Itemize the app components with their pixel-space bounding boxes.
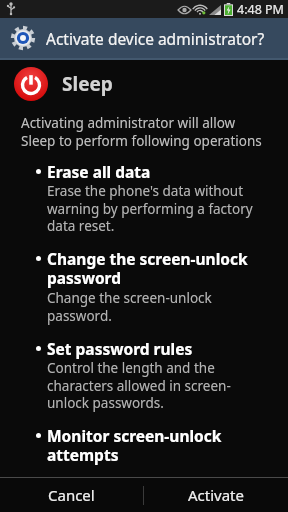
button[interactable]: Cancel — [0, 478, 143, 512]
staticText: Erase the phone's data without warning b… — [47, 182, 270, 235]
staticText: Cancel — [48, 485, 95, 505]
staticText: Change the screen-unlock password. — [47, 289, 270, 325]
staticText: Activate device administrator? — [46, 28, 265, 49]
staticText: 4:48 PM — [237, 1, 284, 18]
staticText: Sleep — [62, 71, 113, 97]
staticText: Set password rules — [47, 338, 193, 359]
staticText: Erase all data — [47, 161, 151, 182]
staticText: Activating administrator will allow Slee… — [21, 114, 270, 150]
button[interactable]: Activate — [144, 478, 288, 512]
staticText: Change the screen-unlock password — [47, 248, 270, 289]
staticText: Activate — [188, 485, 244, 505]
staticText: Monitor screen-unlock attempts — [47, 425, 270, 466]
staticText: Control the length and the characters al… — [47, 359, 270, 412]
